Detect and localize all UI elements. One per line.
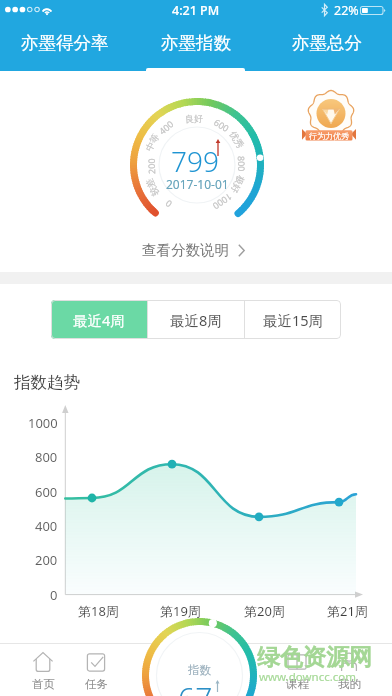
button[interactable]: 亦墨总分 [261,21,392,71]
button[interactable]: 亦墨得分率 [0,21,130,71]
button[interactable]: 最近8周 [148,300,244,339]
staticText: 第20周 [244,602,285,620]
staticText: 400 [35,517,58,535]
staticText: 指数 [188,663,211,677]
button[interactable]: 亦墨指数 [130,21,261,71]
staticText: 第19周 [160,602,201,620]
staticText: 最近8周 [170,310,222,330]
staticText: 1000 [210,191,234,213]
staticText: 22% [334,2,359,19]
staticText: 最近15周 [263,310,324,330]
button[interactable]: 最近4周 [51,300,147,339]
staticText: 良好 [185,112,203,125]
staticText: 4:21 PM [172,2,220,19]
staticText: 亦墨总分 [292,32,362,54]
button[interactable]: 查看分数说明 [142,241,245,259]
staticText: www.downcc.com [259,669,357,685]
staticText: 400 [156,117,176,137]
button[interactable]: 最近15周 [245,300,341,339]
staticText: 较差 [143,177,161,198]
staticText: 亦墨指数 [161,32,231,54]
staticText: 2017-10-01 [166,176,229,192]
staticText: 优秀 [227,129,246,150]
staticText: 中等 [143,132,161,153]
staticText: 800 [35,448,58,466]
button[interactable]: 任务 [69,643,123,696]
staticText: 799 [171,142,219,180]
button[interactable]: 我的 [322,643,376,696]
staticText: 0 [162,197,174,211]
button[interactable]: 指数 [142,649,257,696]
button[interactable]: 课程 [270,643,324,696]
staticText: 第18周 [78,602,119,620]
staticText: 指数趋势 [14,372,80,393]
staticText: 我的 [338,677,361,691]
staticText: 600 [212,116,232,134]
staticText: 课程 [286,677,309,691]
staticText: 1000 [28,414,58,432]
staticText: 首页 [32,677,55,691]
staticText: 行为力优秀 [309,131,349,141]
staticText: 0 [50,586,58,604]
staticText: 200 [145,158,157,174]
staticText: 800 [236,156,248,172]
button[interactable]: 首页 [16,643,70,696]
staticText: 67 [178,677,213,696]
staticText: 亦墨得分率 [21,32,109,54]
staticText: 第21周 [327,602,368,620]
staticText: 极好 [229,174,247,195]
staticText: 绿色资源网 [257,643,372,672]
staticText: 任务 [85,677,108,691]
staticText: 600 [35,483,58,501]
staticText: 查看分数说明 [142,241,229,259]
staticText: 最近4周 [73,310,125,330]
staticText: 200 [35,551,58,569]
